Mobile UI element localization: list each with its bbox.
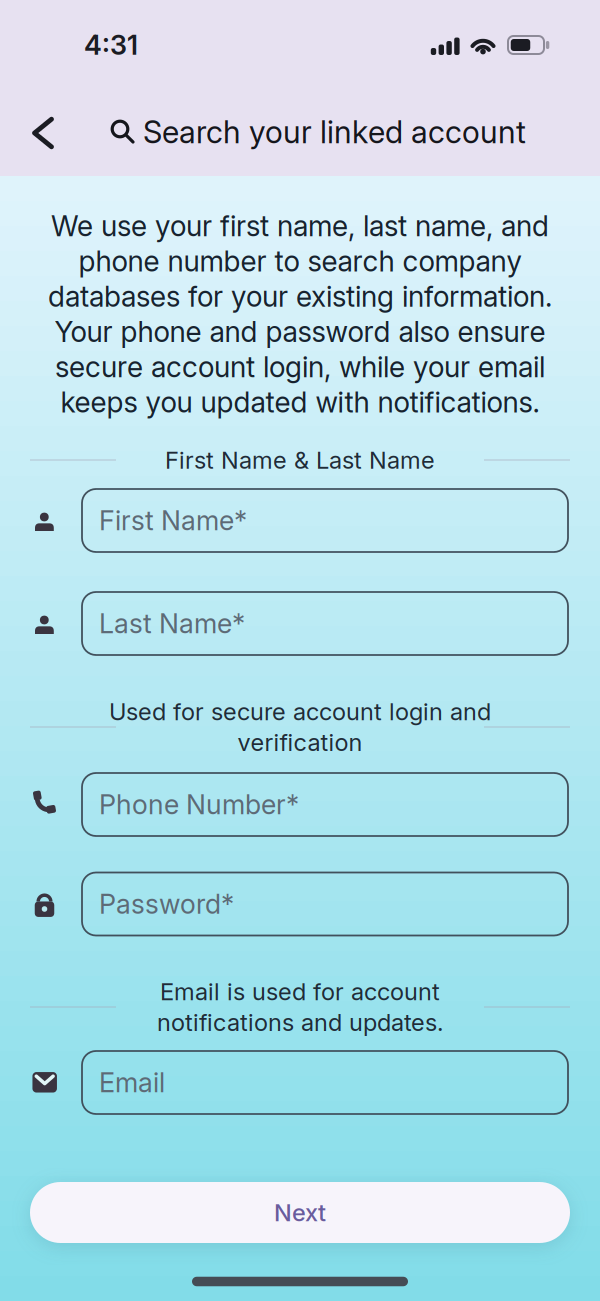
staticText: secure account login, while your email [55, 350, 545, 384]
staticText: Search your linked account [143, 113, 526, 151]
staticText: Next [274, 1198, 326, 1227]
staticText: Password* [99, 888, 234, 920]
staticText: Used for secure account login and [109, 697, 491, 726]
button[interactable]: Last Name* [82, 592, 568, 655]
staticText: 4:31 [84, 29, 138, 61]
button[interactable]: First Name* [82, 489, 568, 552]
staticText: Email [99, 1066, 165, 1099]
staticText: notifications and updates. [157, 1008, 443, 1037]
button[interactable]: Next [30, 1182, 570, 1243]
staticText: verification [237, 728, 362, 757]
button[interactable]: Password* [82, 872, 568, 935]
staticText: keeps you updated with notifications. [60, 385, 539, 419]
button[interactable]: Phone Number* [82, 773, 568, 836]
button[interactable]: Email [82, 1051, 568, 1114]
staticText: We use your first name, last name, and [51, 209, 549, 243]
staticText: First Name* [99, 504, 247, 537]
button[interactable]: Back [21, 111, 65, 155]
staticText: phone number to search company [78, 244, 521, 278]
staticText: Last Name* [99, 607, 245, 640]
staticText: databases for your existing information. [48, 279, 552, 314]
staticText: First Name & Last Name [165, 446, 435, 474]
staticText: Phone Number* [99, 788, 299, 821]
staticText: Your phone and password also ensure [54, 314, 545, 349]
staticText: Email is used for account [160, 977, 440, 1006]
